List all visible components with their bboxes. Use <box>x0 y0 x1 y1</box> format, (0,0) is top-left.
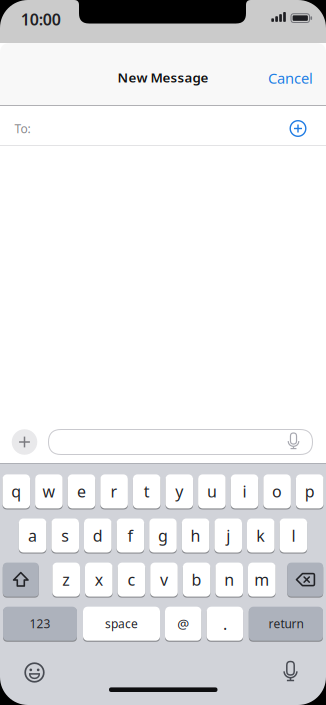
button[interactable]: e <box>68 474 95 508</box>
staticText: New Message <box>117 68 208 86</box>
button[interactable]: Add Contact <box>288 118 308 138</box>
staticText: l <box>291 525 295 546</box>
button[interactable]: b <box>183 563 210 597</box>
button[interactable]: 123 <box>3 607 77 641</box>
staticText: h <box>191 525 201 546</box>
button[interactable]: l <box>280 518 307 552</box>
staticText: z <box>62 569 70 590</box>
button[interactable]: u <box>198 474 226 508</box>
button[interactable]: q <box>2 474 30 508</box>
staticText: t <box>144 481 150 502</box>
button[interactable]: m <box>248 563 276 597</box>
button[interactable]: Emoji <box>22 660 46 684</box>
staticText: j <box>226 525 230 546</box>
button[interactable]: i <box>231 474 258 508</box>
staticText: a <box>28 525 37 546</box>
button[interactable]: Shift <box>3 563 39 597</box>
button[interactable]: . <box>207 607 243 641</box>
button[interactable]: k <box>247 518 275 552</box>
staticText: m <box>254 569 269 590</box>
button[interactable]: t <box>133 474 160 508</box>
button[interactable]: Dictation <box>277 659 303 685</box>
button[interactable]: h <box>182 518 209 552</box>
button[interactable]: p <box>296 474 323 508</box>
button[interactable]: Delete <box>287 563 323 597</box>
staticText: g <box>158 525 168 546</box>
staticText: c <box>127 569 135 590</box>
button[interactable]: a <box>19 518 46 552</box>
button[interactable]: @ <box>165 607 201 641</box>
button[interactable]: w <box>35 474 63 508</box>
button[interactable]: Cancel <box>268 68 313 88</box>
staticText: p <box>305 481 315 502</box>
staticText: v <box>160 569 168 590</box>
staticText: f <box>127 525 133 546</box>
staticText: 123 <box>29 616 50 632</box>
button[interactable]: f <box>117 518 144 552</box>
staticText: q <box>11 481 21 502</box>
button[interactable]: n <box>215 563 243 597</box>
staticText: w <box>42 481 55 502</box>
button[interactable]: o <box>263 474 291 508</box>
button[interactable]: s <box>51 518 79 552</box>
button[interactable]: Attach <box>11 429 37 455</box>
button[interactable]: c <box>118 563 145 597</box>
staticText: u <box>207 481 217 502</box>
staticText: n <box>224 569 234 590</box>
staticText: s <box>61 525 69 546</box>
button[interactable]: return <box>249 607 323 641</box>
staticText: To: <box>14 120 30 136</box>
button[interactable]: y <box>165 474 193 508</box>
button[interactable]: x <box>85 563 113 597</box>
staticText: 10:00 <box>21 9 61 30</box>
button[interactable]: g <box>149 518 177 552</box>
staticText: k <box>256 525 265 546</box>
staticText: e <box>77 481 86 502</box>
button[interactable]: z <box>52 563 80 597</box>
staticText: o <box>272 481 282 502</box>
staticText: r <box>111 481 118 502</box>
staticText: d <box>93 525 103 546</box>
staticText: i <box>242 481 246 502</box>
staticText: @ <box>177 615 189 632</box>
staticText: y <box>175 481 183 502</box>
button[interactable]: r <box>100 474 128 508</box>
staticText: x <box>95 569 103 590</box>
staticText: space <box>105 616 138 632</box>
button[interactable]: space <box>83 607 160 641</box>
staticText: b <box>192 569 202 590</box>
button[interactable]: d <box>84 518 112 552</box>
staticText: return <box>268 616 303 632</box>
button[interactable]: Message text field <box>48 429 313 455</box>
button[interactable]: j <box>214 518 242 552</box>
staticText: Cancel <box>268 68 313 88</box>
staticText: . <box>223 613 227 634</box>
button[interactable]: v <box>150 563 178 597</box>
